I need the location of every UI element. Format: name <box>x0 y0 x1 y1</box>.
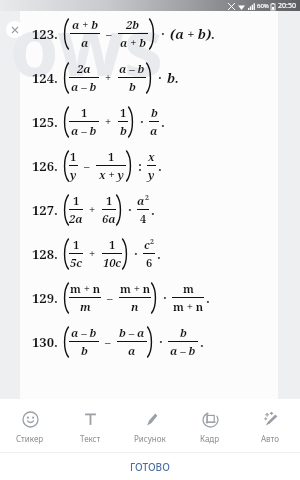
staticText: b <box>151 105 158 120</box>
staticText: 1 <box>108 149 115 164</box>
staticText: Текст <box>80 433 101 444</box>
button[interactable]: ГОТОВО <box>0 453 300 480</box>
staticText: · <box>158 69 162 87</box>
staticText: 5c <box>70 255 82 270</box>
staticText: x + y <box>99 167 124 182</box>
staticText: · <box>161 25 165 43</box>
staticText: 6a <box>102 211 116 226</box>
staticText: + <box>89 246 96 261</box>
staticText: 2a <box>77 61 91 76</box>
staticText: y <box>70 167 77 182</box>
staticText: . <box>158 157 162 175</box>
staticText: – <box>106 26 112 41</box>
button[interactable]: Стикер <box>0 405 60 450</box>
staticText: a + b <box>120 35 147 50</box>
staticText: 130. <box>32 333 58 351</box>
button[interactable]: Close <box>6 21 23 38</box>
staticText: . <box>161 113 165 131</box>
staticText: 126. <box>32 157 58 175</box>
staticText: 125. <box>32 113 58 131</box>
staticText: m + n <box>120 281 151 296</box>
staticText: · <box>140 113 144 131</box>
staticText: ГОТОВО <box>130 460 170 474</box>
staticText: 2b <box>126 17 140 32</box>
staticText: 1 <box>70 149 77 164</box>
staticText: 1 <box>109 237 116 252</box>
staticText: y <box>148 167 155 182</box>
staticText: 2 <box>145 193 149 203</box>
staticText: . <box>151 201 155 219</box>
staticText: 2a <box>69 211 83 226</box>
staticText: 2 <box>150 237 154 247</box>
staticText: b. <box>167 69 180 87</box>
staticText: 60% <box>257 2 269 10</box>
staticText: 123. <box>32 25 58 43</box>
staticText: m <box>183 281 194 296</box>
staticText: 128. <box>32 245 58 263</box>
staticText: · <box>128 201 132 219</box>
staticText: a <box>81 35 89 50</box>
staticText: a – b <box>71 79 97 94</box>
staticText: 10c <box>103 255 122 270</box>
staticText: a – b <box>119 61 145 76</box>
button[interactable]: Текст <box>60 405 120 450</box>
staticText: a – b <box>71 325 97 340</box>
staticText: c <box>144 237 150 252</box>
staticText: 6 <box>146 255 153 270</box>
staticText: a <box>128 343 136 358</box>
staticText: + <box>105 114 112 129</box>
staticText: + <box>105 70 112 85</box>
staticText: + <box>89 202 96 217</box>
staticText: – <box>107 290 113 305</box>
staticText: 1 <box>81 105 88 120</box>
staticText: b – a <box>119 325 145 340</box>
staticText: 1 <box>73 237 80 252</box>
staticText: 127. <box>32 201 58 219</box>
staticText: . <box>157 245 161 263</box>
staticText: b <box>81 343 88 358</box>
staticText: 1 <box>73 193 80 208</box>
staticText: a <box>150 123 158 138</box>
staticText: ows <box>10 0 164 99</box>
staticText: . <box>200 333 204 351</box>
button[interactable]: Авто <box>240 405 300 450</box>
staticText: 1 <box>106 193 113 208</box>
staticText: 4 <box>140 211 147 226</box>
button[interactable]: Кадр <box>180 405 240 450</box>
staticText: a – b <box>71 123 97 138</box>
staticText: · <box>159 333 163 351</box>
staticText: – <box>105 334 111 349</box>
staticText: : <box>138 157 142 175</box>
staticText: m <box>80 299 91 314</box>
staticText: m + n <box>173 299 204 314</box>
staticText: a <box>137 193 145 208</box>
staticText: n <box>131 299 139 314</box>
staticText: – <box>84 158 90 173</box>
staticText: m + n <box>70 281 101 296</box>
staticText: Кадр <box>200 433 220 444</box>
staticText: a + b <box>72 17 99 32</box>
staticText: 20:50 <box>278 1 296 11</box>
staticText: 124. <box>32 69 58 87</box>
staticText: 1 <box>120 105 127 120</box>
staticText: Рисунок <box>134 433 166 444</box>
staticText: · <box>163 289 167 307</box>
staticText: 129. <box>32 289 58 307</box>
staticText: a – b <box>170 343 196 358</box>
staticText: b <box>180 325 187 340</box>
button[interactable]: Рисунок <box>120 405 180 450</box>
staticText: b <box>120 123 127 138</box>
staticText: Стикер <box>16 433 44 444</box>
staticText: b <box>129 79 136 94</box>
staticText: . <box>206 289 210 307</box>
staticText: Авто <box>261 433 279 444</box>
staticText: · <box>134 245 138 263</box>
staticText: (a + b). <box>170 25 216 43</box>
staticText: x <box>148 149 155 164</box>
